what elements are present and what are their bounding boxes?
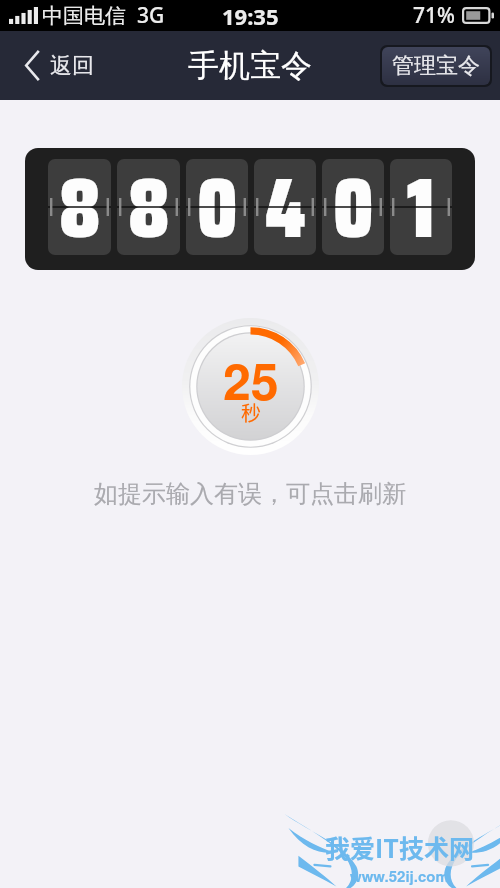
staticText: 1 [407, 148, 435, 238]
staticText: www.52ij.com [350, 865, 449, 886]
staticText: 管理宝令 [392, 52, 480, 80]
staticText: 秒 [241, 398, 261, 427]
staticText: 8 [128, 148, 170, 238]
staticText: 0 [197, 148, 238, 238]
staticText: 中国电信 [42, 3, 126, 29]
staticText: 手机宝令 [188, 46, 312, 85]
button[interactable]: 管理宝令 [382, 47, 490, 85]
staticText: 4 [265, 148, 306, 238]
staticText: 25 [223, 344, 279, 416]
staticText: 我爱IT技术网 [325, 829, 474, 865]
staticText: 返回 [50, 52, 94, 80]
staticText: 3G [137, 1, 165, 30]
staticText: 0 [333, 148, 374, 238]
staticText: 如提示输入有误，可点击刷新 [94, 479, 406, 509]
button[interactable]: 返回 [0, 36, 110, 95]
staticText: 8 [59, 148, 101, 238]
staticText: 71% [413, 1, 455, 30]
staticText: 19:35 [222, 1, 279, 31]
